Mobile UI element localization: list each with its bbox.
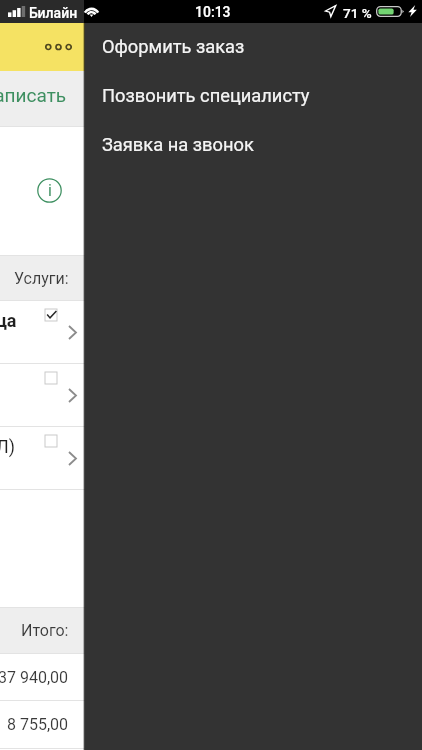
button[interactable]: Доставка по городу	[0, 364, 85, 426]
staticText: Заявка на звонок	[102, 134, 254, 155]
button[interactable]: Заявка на звонок	[85, 120, 422, 169]
button[interactable]: Позвонить специалисту	[85, 71, 422, 120]
staticText: Услуги:	[14, 269, 69, 288]
staticText: Оформить заказ	[102, 36, 245, 57]
staticText: Записать	[0, 84, 67, 106]
button[interactable]: Записать	[0, 78, 71, 112]
staticText: Билайн	[29, 5, 78, 21]
staticText: Итого:	[21, 621, 69, 640]
button[interactable]: Оформить заказ	[85, 22, 422, 71]
button[interactable]: Information	[37, 178, 62, 203]
staticText: Установка кондиционера улица	[0, 310, 17, 331]
staticText: Монтаж наружного блока (Л)	[0, 436, 15, 457]
staticText: 71 %	[343, 5, 372, 21]
staticText: 10:13	[195, 4, 231, 20]
button[interactable]: Монтаж наружного блока (Л)	[0, 427, 85, 489]
button[interactable]: More options	[36, 25, 80, 69]
staticText: Позвонить специалисту	[102, 85, 310, 106]
staticText: i	[48, 181, 52, 200]
staticText: 137 940,00	[0, 668, 69, 687]
staticText: 8 755,00	[7, 715, 69, 734]
button[interactable]: Установка кондиционера улица	[0, 301, 85, 363]
